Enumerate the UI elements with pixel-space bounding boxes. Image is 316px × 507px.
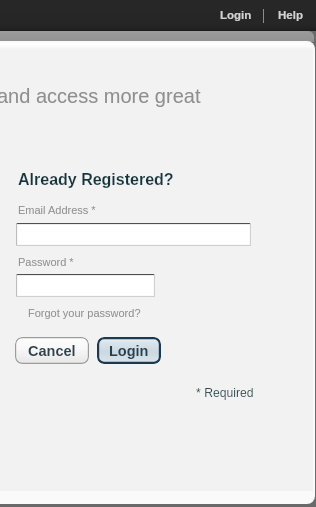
button[interactable]: Login <box>97 337 161 364</box>
button[interactable] <box>16 274 155 297</box>
staticText: Password * <box>18 256 74 268</box>
button[interactable]: Cancel <box>15 337 89 364</box>
staticText: Help <box>278 9 303 22</box>
button[interactable]: Forgot your password? <box>24 305 145 321</box>
staticText: Login <box>109 343 149 359</box>
staticText: * Required <box>196 386 254 400</box>
staticText: and access more great <box>0 85 201 107</box>
button[interactable] <box>16 223 251 246</box>
staticText: Cancel <box>28 343 76 359</box>
button[interactable]: Help <box>271 3 309 28</box>
staticText: Email Address * <box>18 204 96 216</box>
staticText: Already Registered? <box>18 171 174 189</box>
staticText: Forgot your password? <box>28 307 141 319</box>
staticText: Login <box>220 9 252 22</box>
button[interactable]: Login <box>214 3 258 28</box>
